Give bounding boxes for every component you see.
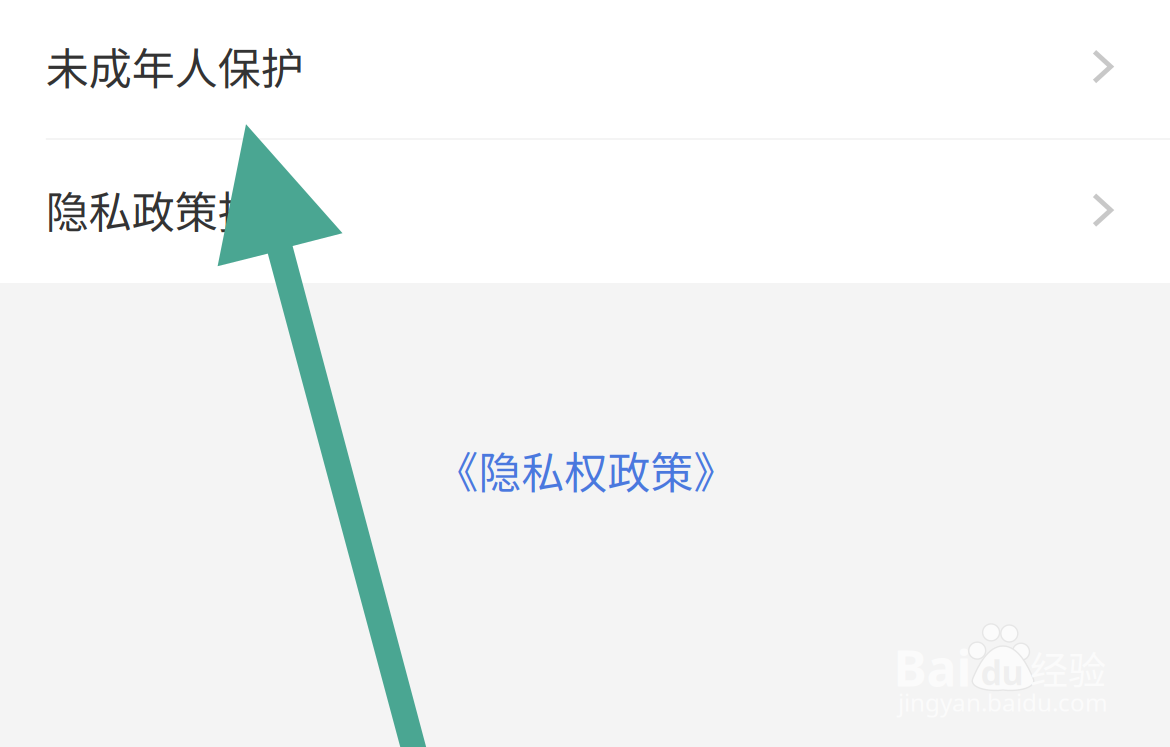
staticText: Bai <box>893 633 971 701</box>
staticText: 隐私政策指引 <box>46 178 304 241</box>
staticText: 未成年人保护 <box>46 35 304 97</box>
staticText: 《隐私权政策》 <box>435 439 736 501</box>
button[interactable]: 隐私政策指引 <box>0 140 1170 283</box>
button[interactable]: 《隐私权政策》 <box>435 439 736 501</box>
button[interactable]: 未成年人保护 <box>0 0 1170 138</box>
staticText: du <box>980 649 1023 695</box>
